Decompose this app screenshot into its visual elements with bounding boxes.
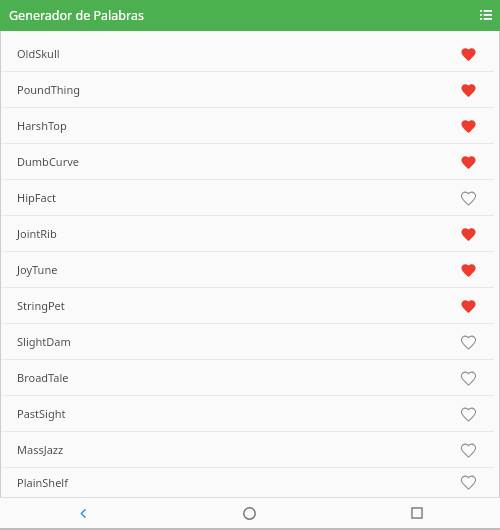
- staticText: DumbCurve: [17, 154, 453, 169]
- button[interactable]: JoyTune: [1, 252, 494, 287]
- staticText: PastSight: [17, 406, 453, 421]
- button[interactable]: Atrás: [0, 498, 166, 528]
- button[interactable]: BroadTale: [1, 360, 494, 395]
- staticText: HipFact: [17, 190, 453, 205]
- button[interactable]: PoundThing: [1, 72, 494, 107]
- staticText: OldSkull: [17, 46, 453, 61]
- button[interactable]: Inicio: [166, 498, 333, 528]
- button[interactable]: HarshTop: [1, 108, 494, 143]
- staticText: JoyTune: [17, 262, 453, 277]
- button[interactable]: Quitar de favoritos: [453, 111, 483, 141]
- button[interactable]: Quitar de favoritos: [453, 147, 483, 177]
- staticText: MassJazz: [17, 442, 453, 457]
- staticText: JointRib: [17, 226, 453, 241]
- button[interactable]: Añadir a favoritos: [453, 363, 483, 393]
- button[interactable]: OldSkull: [1, 36, 494, 71]
- button[interactable]: Quitar de favoritos: [453, 291, 483, 321]
- button[interactable]: Añadir a favoritos: [453, 468, 483, 497]
- button[interactable]: Menú de lista: [472, 2, 500, 30]
- staticText: PlainShelf: [17, 475, 453, 490]
- staticText: BroadTale: [17, 370, 453, 385]
- button[interactable]: Aplicaciones recientes: [333, 498, 500, 528]
- button[interactable]: Añadir a favoritos: [453, 399, 483, 429]
- button[interactable]: HipFact: [1, 180, 494, 215]
- staticText: SlightDam: [17, 334, 453, 349]
- button[interactable]: StringPet: [1, 288, 494, 323]
- button[interactable]: Añadir a favoritos: [453, 327, 483, 357]
- button[interactable]: Quitar de favoritos: [453, 219, 483, 249]
- staticText: HarshTop: [17, 118, 453, 133]
- button[interactable]: PlainShelf: [1, 468, 494, 497]
- button[interactable]: JointRib: [1, 216, 494, 251]
- staticText: StringPet: [17, 298, 453, 313]
- staticText: PoundThing: [17, 82, 453, 97]
- button[interactable]: SlightDam: [1, 324, 494, 359]
- button[interactable]: Quitar de favoritos: [453, 75, 483, 105]
- button[interactable]: Añadir a favoritos: [453, 183, 483, 213]
- button[interactable]: MassJazz: [1, 432, 494, 467]
- button[interactable]: PastSight: [1, 396, 494, 431]
- staticText: Generador de Palabras: [9, 7, 144, 24]
- button[interactable]: DumbCurve: [1, 144, 494, 179]
- button[interactable]: Añadir a favoritos: [453, 435, 483, 465]
- button[interactable]: Quitar de favoritos: [453, 255, 483, 285]
- button[interactable]: Quitar de favoritos: [453, 39, 483, 69]
